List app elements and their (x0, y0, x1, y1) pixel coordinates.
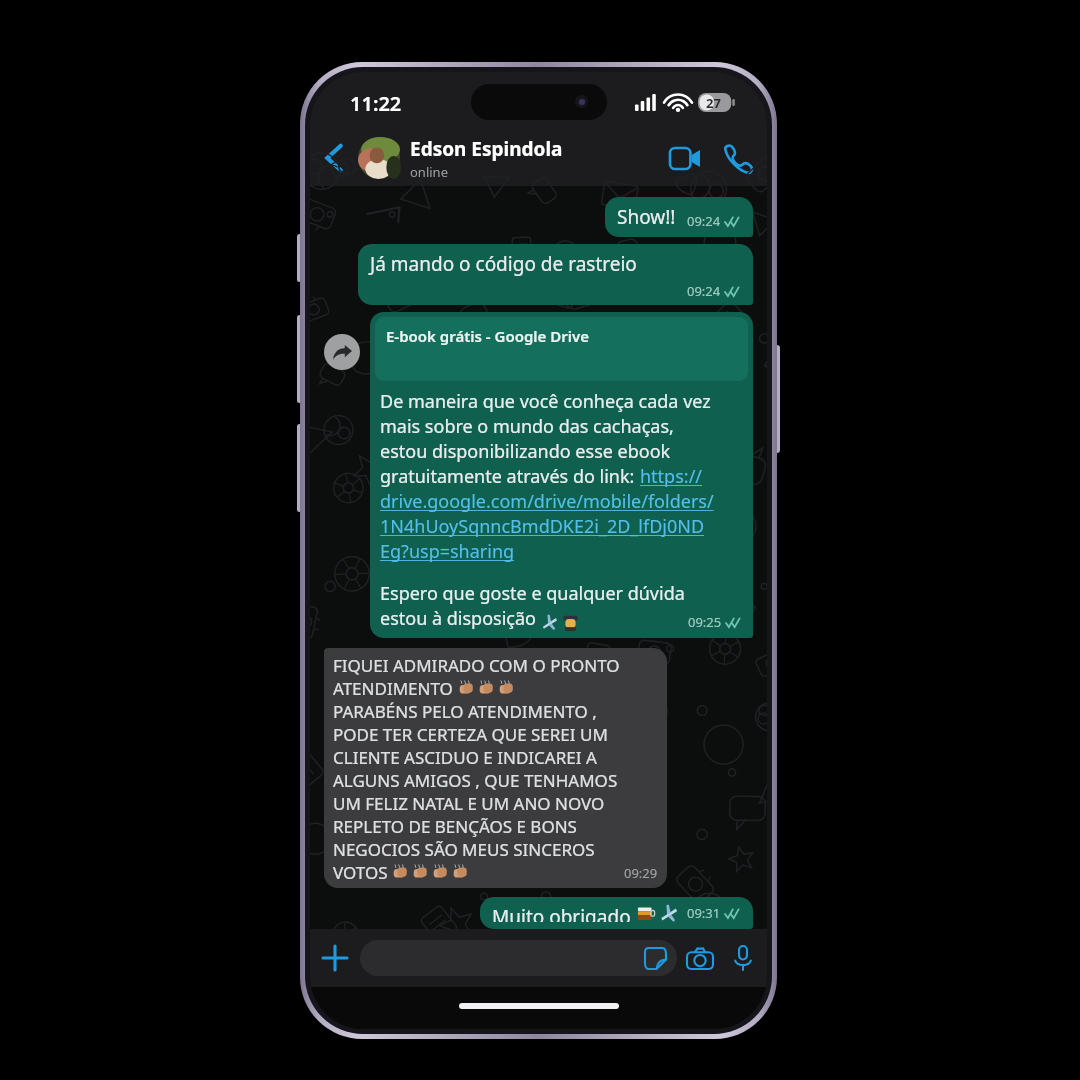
button[interactable]: Stickers (641, 944, 669, 972)
staticText: gratuitamente através do link: (380, 464, 640, 489)
staticText: De maneira que você conheça cada vez (380, 389, 711, 414)
staticText: 1N4hUoySqnncBmdDKE2i_2D_lfDj0ND (380, 514, 705, 539)
button[interactable]: Video call (659, 130, 711, 186)
button[interactable]: Forward (324, 334, 360, 370)
button[interactable]: Show!! (605, 197, 753, 237)
staticText: 09:25 (688, 613, 722, 631)
button[interactable]: Edson Espindola (358, 130, 659, 186)
button[interactable]: Back (310, 130, 358, 186)
staticText: PARABÉNS PELO ATENDIMENTO , (333, 700, 597, 723)
staticText: online (410, 163, 448, 181)
staticText: 09:31 (687, 904, 721, 922)
staticText: https:// (640, 464, 703, 489)
staticText: ALGUNS AMIGOS , QUE TENHAMOS (333, 769, 618, 792)
staticText: UM FELIZ NATAL E UM ANO NOVO (333, 792, 605, 815)
staticText: FIQUEI ADMIRADO COM O PRONTO (333, 654, 620, 677)
staticText: 27 (706, 94, 721, 112)
staticText: estou à disposição (380, 606, 541, 631)
staticText: estou disponibilizando esse ebook (380, 439, 671, 464)
staticText: CLIENTE ASCIDUO E INDICAREI A (333, 746, 597, 769)
button[interactable]: Camera (677, 929, 723, 987)
staticText: 09:24 (687, 282, 721, 300)
staticText: mais sobre o mundo das cachaças, (380, 414, 674, 439)
staticText: Muito obrigado (492, 904, 636, 922)
button[interactable]: Attach (310, 929, 360, 987)
staticText: PODE TER CERTEZA QUE SEREI UM (333, 723, 608, 746)
staticText: Eg?usp=sharing (380, 539, 515, 564)
staticText: Edson Espindola (410, 136, 563, 162)
staticText: 09:24 (687, 212, 721, 230)
button[interactable]: Voice message (723, 929, 763, 987)
staticText: VOTOS (333, 861, 392, 884)
staticText: ATENDIMENTO (333, 677, 458, 700)
staticText: REPLETO DE BENÇÃOS E BONS (333, 815, 577, 838)
staticText: 11:22 (350, 90, 402, 117)
staticText: NEGOCIOS SÃO MEUS SINCEROS (333, 838, 595, 861)
button[interactable]: Voice call (711, 130, 763, 186)
staticText: Espero que goste e qualquer dúvida (380, 581, 685, 606)
button[interactable]: E-book grátis - Google Drive (375, 317, 748, 381)
button[interactable]: E-book grátis - Google Drive (370, 312, 753, 638)
staticText: Show!! (617, 204, 676, 230)
staticText: drive.google.com/drive/mobile/folders/ (380, 489, 714, 514)
staticText: Já mando o código de rastreio (370, 251, 637, 277)
button[interactable]: Stickers (360, 940, 677, 976)
button[interactable]: FIQUEI ADMIRADO COM O PRONTO (324, 648, 667, 888)
button[interactable]: Já mando o código de rastreio (358, 244, 753, 305)
button[interactable]: Muito obrigado (480, 897, 753, 929)
staticText: E-book grátis - Google Drive (386, 326, 589, 346)
staticText: 09:29 (624, 864, 658, 882)
